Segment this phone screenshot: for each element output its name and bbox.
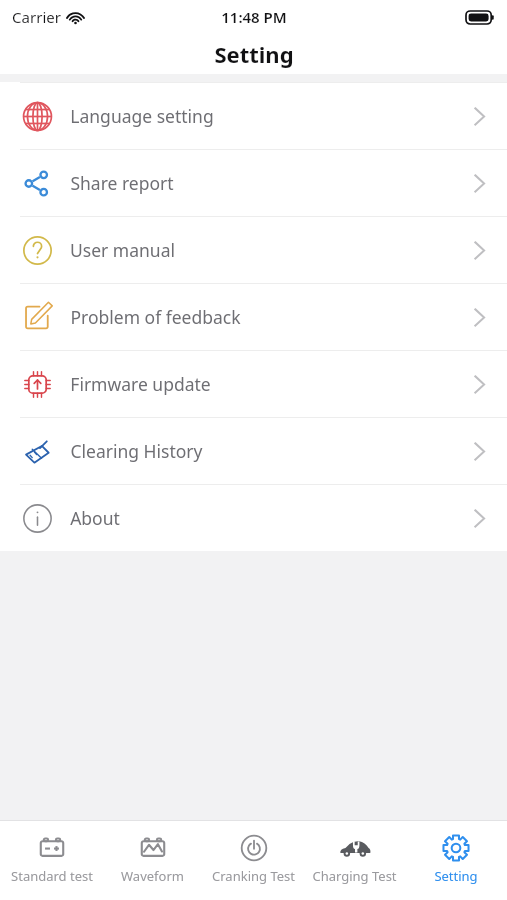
- button[interactable]: Setting: [406, 828, 505, 893]
- staticText: 11:48 PM: [221, 7, 287, 27]
- staticText: Waveform: [121, 867, 184, 885]
- staticText: Clearing History: [70, 439, 203, 463]
- staticText: Setting: [434, 867, 478, 885]
- staticText: Carrier: [12, 7, 61, 27]
- button[interactable]: Charging Test: [305, 828, 404, 893]
- staticText: Language setting: [70, 104, 214, 128]
- button[interactable]: Share report: [0, 150, 507, 216]
- staticText: About: [70, 506, 120, 530]
- button[interactable]: About: [0, 485, 507, 551]
- staticText: Problem of feedback: [70, 305, 241, 329]
- button[interactable]: Waveform: [103, 828, 202, 893]
- button[interactable]: Problem of feedback: [0, 284, 507, 350]
- staticText: User manual: [70, 238, 175, 262]
- staticText: Cranking Test: [212, 867, 295, 885]
- staticText: Setting: [214, 39, 294, 69]
- button[interactable]: Clearing History: [0, 418, 507, 484]
- staticText: Firmware update: [70, 372, 211, 396]
- button[interactable]: User manual: [0, 217, 507, 283]
- button[interactable]: Cranking Test: [204, 828, 303, 893]
- staticText: Charging Test: [312, 867, 397, 885]
- staticText: Share report: [70, 171, 174, 195]
- button[interactable]: Firmware update: [0, 351, 507, 417]
- button[interactable]: Language setting: [0, 83, 507, 149]
- button[interactable]: Standard test: [2, 828, 101, 893]
- staticText: Standard test: [11, 867, 93, 885]
